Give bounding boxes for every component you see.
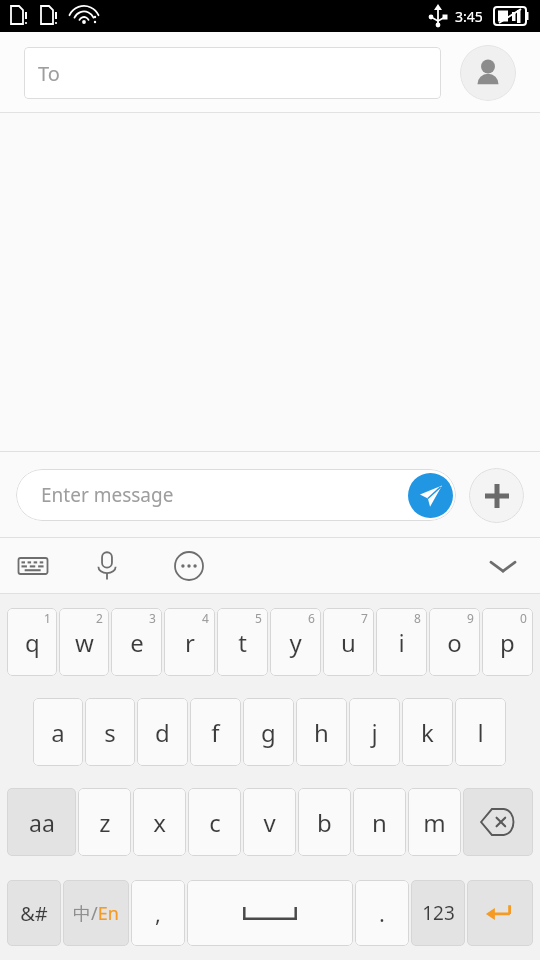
button[interactable]: n xyxy=(353,788,406,856)
button[interactable]: y xyxy=(270,608,321,676)
button[interactable]: z xyxy=(78,788,131,856)
button[interactable]: Add attachment xyxy=(469,468,524,523)
staticText: 5 xyxy=(255,610,262,626)
staticText: m xyxy=(423,806,446,839)
button[interactable]: v xyxy=(243,788,296,856)
staticText: c xyxy=(209,806,221,839)
staticText: aa xyxy=(29,807,55,838)
button[interactable]: j xyxy=(349,698,400,766)
button[interactable]: &# xyxy=(7,880,61,946)
staticText: 7 xyxy=(361,610,368,626)
staticText: j xyxy=(371,716,378,749)
button[interactable]: b xyxy=(298,788,351,856)
staticText: 中/En xyxy=(73,901,119,926)
button[interactable]: s xyxy=(85,698,135,766)
button[interactable]: h xyxy=(296,698,347,766)
button[interactable]: Enter message xyxy=(16,469,456,521)
button[interactable]: To xyxy=(24,47,441,99)
staticText: b xyxy=(317,806,332,839)
button[interactable]: g xyxy=(243,698,294,766)
staticText: o xyxy=(447,626,462,659)
staticText: n xyxy=(372,806,387,839)
button[interactable]: Choose contact xyxy=(460,45,516,101)
staticText: 9 xyxy=(467,610,474,626)
staticText: , xyxy=(155,898,161,928)
button[interactable]: e xyxy=(111,608,162,676)
button[interactable]: r xyxy=(164,608,215,676)
staticText: 123 xyxy=(422,900,455,926)
staticText: Enter message xyxy=(41,482,174,508)
button[interactable]: a xyxy=(33,698,83,766)
staticText: 4 xyxy=(202,610,209,626)
staticText: p xyxy=(500,626,515,659)
button[interactable] xyxy=(187,880,353,946)
button[interactable]: 中/En xyxy=(63,880,129,946)
button[interactable]: u xyxy=(323,608,374,676)
staticText: 2 xyxy=(96,610,103,626)
button[interactable]: k xyxy=(402,698,453,766)
staticText: d xyxy=(155,716,170,749)
button[interactable]: Backspace xyxy=(463,788,533,856)
button[interactable]: Hide keyboard xyxy=(466,538,540,594)
staticText: y xyxy=(289,626,302,659)
button[interactable]: Send message xyxy=(408,473,453,518)
staticText: 8 xyxy=(414,610,421,626)
button[interactable]: i xyxy=(376,608,427,676)
button[interactable]: aa xyxy=(7,788,76,856)
staticText: u xyxy=(341,626,356,659)
button[interactable]: More options xyxy=(148,538,230,594)
staticText: s xyxy=(104,716,116,749)
staticText: z xyxy=(99,806,111,839)
staticText: a xyxy=(51,716,65,749)
button[interactable]: . xyxy=(355,880,409,946)
button[interactable]: f xyxy=(190,698,241,766)
staticText: To xyxy=(38,60,60,87)
button[interactable]: Keyboard layout xyxy=(0,538,66,594)
button[interactable]: m xyxy=(408,788,461,856)
button[interactable]: o xyxy=(429,608,480,676)
button[interactable]: x xyxy=(133,788,186,856)
staticText: e xyxy=(130,626,144,659)
button[interactable]: t xyxy=(217,608,268,676)
button[interactable]: , xyxy=(131,880,185,946)
staticText: x xyxy=(153,806,166,839)
staticText: &# xyxy=(20,900,48,927)
staticText: t xyxy=(238,626,247,659)
button[interactable]: w xyxy=(59,608,109,676)
button[interactable]: Voice input xyxy=(66,538,148,594)
staticText: h xyxy=(314,716,329,749)
staticText: . xyxy=(379,898,385,928)
staticText: l xyxy=(477,716,484,749)
staticText: i xyxy=(398,626,405,659)
staticText: 1 xyxy=(44,610,51,626)
staticText: r xyxy=(185,626,195,659)
button[interactable]: 123 xyxy=(411,880,465,946)
staticText: f xyxy=(211,716,220,749)
staticText: 3 xyxy=(149,610,156,626)
staticText: g xyxy=(261,716,276,749)
button[interactable]: d xyxy=(137,698,188,766)
staticText: k xyxy=(421,716,434,749)
staticText: 0 xyxy=(520,610,527,626)
staticText: v xyxy=(263,806,276,839)
button[interactable]: p xyxy=(482,608,533,676)
button[interactable]: q xyxy=(7,608,57,676)
button[interactable]: Enter xyxy=(467,880,533,946)
staticText: q xyxy=(25,626,40,659)
button[interactable]: l xyxy=(455,698,506,766)
staticText: w xyxy=(75,626,94,659)
button[interactable]: c xyxy=(188,788,241,856)
staticText: 6 xyxy=(308,610,315,626)
staticText: 3:45 xyxy=(455,7,483,26)
